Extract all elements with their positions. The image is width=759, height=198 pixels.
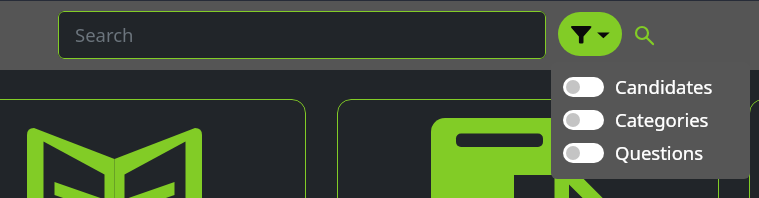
staticText: Search bbox=[75, 22, 134, 47]
button[interactable]: Search bbox=[630, 14, 660, 54]
button[interactable]: Categories bbox=[551, 104, 750, 136]
staticText: Categories bbox=[615, 107, 709, 132]
button[interactable] bbox=[749, 99, 759, 198]
button[interactable]: Candidates bbox=[551, 71, 750, 103]
button[interactable] bbox=[337, 99, 719, 198]
staticText: Candidates bbox=[615, 74, 713, 99]
button[interactable]: Questions bbox=[551, 137, 750, 169]
button[interactable] bbox=[0, 99, 306, 198]
staticText: Questions bbox=[615, 140, 704, 165]
button[interactable]: Search bbox=[58, 11, 546, 59]
button[interactable]: Filter bbox=[558, 12, 622, 56]
